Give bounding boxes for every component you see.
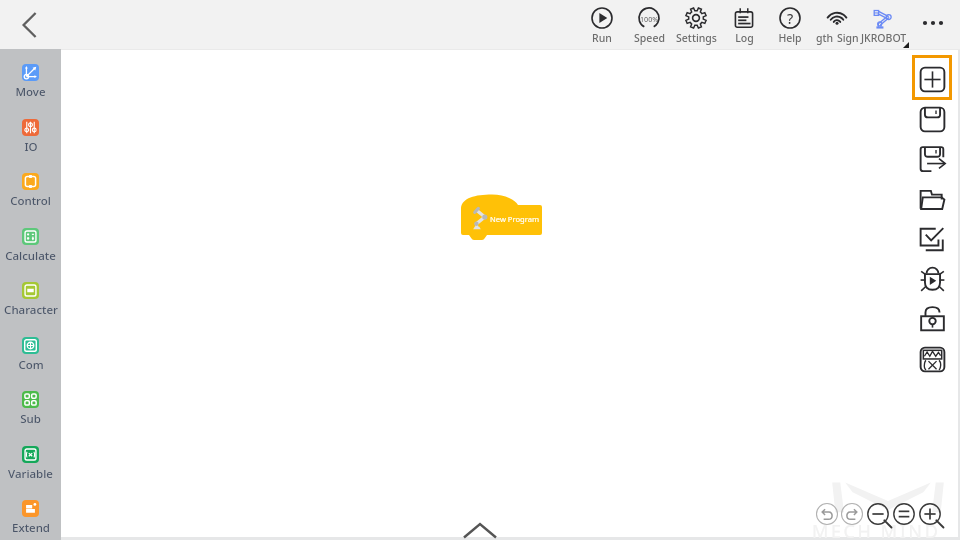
button[interactable]: Reset zoom bbox=[890, 500, 918, 528]
button[interactable]: Zoom in bbox=[916, 500, 944, 528]
staticText: Calculate bbox=[5, 248, 56, 264]
button[interactable]: Move bbox=[0, 64, 61, 114]
staticText: Sign bbox=[837, 31, 859, 45]
button[interactable]: Settings bbox=[673, 0, 719, 49]
button[interactable]: Check bbox=[912, 219, 952, 259]
button[interactable]: Log bbox=[721, 0, 767, 49]
button[interactable]: Undo bbox=[815, 502, 839, 526]
staticText: New Program bbox=[490, 214, 540, 224]
staticText: MECH MIND bbox=[812, 519, 941, 540]
button[interactable]: Sub bbox=[0, 391, 61, 441]
staticText: Speed bbox=[634, 31, 665, 45]
button[interactable]: Expand panel bbox=[456, 518, 504, 540]
staticText: Run bbox=[592, 31, 612, 45]
button[interactable]: Com bbox=[0, 337, 61, 387]
staticText: IO bbox=[24, 139, 38, 155]
staticText: Help bbox=[778, 31, 802, 45]
staticText: JKROBOT bbox=[861, 31, 907, 45]
button[interactable]: New Program bbox=[461, 194, 542, 242]
button[interactable] bbox=[814, 0, 860, 49]
button[interactable]: More options bbox=[912, 0, 954, 49]
button[interactable] bbox=[860, 0, 906, 49]
staticText: ? bbox=[787, 9, 794, 28]
button[interactable]: Back bbox=[0, 0, 60, 49]
button[interactable]: 100% bbox=[626, 0, 672, 49]
button[interactable]: Character bbox=[0, 282, 61, 332]
staticText: 100% bbox=[640, 14, 659, 24]
button[interactable]: Zoom out bbox=[864, 500, 892, 528]
button[interactable]: Lock bbox=[912, 299, 952, 339]
button[interactable]: Debug bbox=[912, 259, 952, 299]
button[interactable]: Redo bbox=[840, 502, 864, 526]
staticText: gth bbox=[816, 31, 834, 45]
button[interactable]: Variable bbox=[0, 446, 61, 496]
staticText: Character bbox=[4, 302, 58, 318]
button[interactable]: Run bbox=[579, 0, 625, 49]
button[interactable]: Monitor bbox=[912, 339, 952, 379]
button[interactable]: Calculate bbox=[0, 228, 61, 278]
staticText: Extend bbox=[12, 520, 50, 536]
button[interactable]: Save as bbox=[912, 139, 952, 179]
button[interactable]: Save bbox=[912, 99, 952, 139]
button[interactable]: Control bbox=[0, 173, 61, 223]
staticText: Variable bbox=[8, 466, 53, 482]
button[interactable]: ? bbox=[767, 0, 813, 49]
staticText: Control bbox=[10, 193, 51, 209]
button[interactable]: New bbox=[912, 59, 952, 99]
staticText: Move bbox=[15, 84, 46, 100]
staticText: Sub bbox=[20, 411, 41, 427]
staticText: Settings bbox=[676, 31, 717, 45]
button[interactable]: Open bbox=[912, 179, 952, 219]
staticText: Log bbox=[735, 31, 754, 45]
button[interactable]: IO bbox=[0, 119, 61, 169]
staticText: Com bbox=[18, 357, 44, 373]
button[interactable]: Extend bbox=[0, 500, 61, 540]
